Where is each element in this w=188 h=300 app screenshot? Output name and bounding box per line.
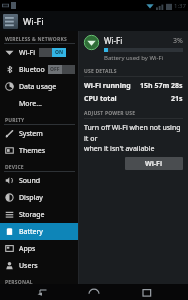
- staticText: Bluetooth: [19, 65, 45, 75]
- button[interactable]: System: [0, 125, 78, 142]
- button[interactable]: Display: [0, 189, 78, 206]
- staticText: Wi-Fi running: [84, 81, 140, 91]
- staticText: Battery: [19, 227, 43, 237]
- staticText: Wi-Fi: [23, 15, 44, 27]
- staticText: Data usage: [19, 82, 57, 92]
- staticText: System: [19, 129, 43, 139]
- staticText: Sound: [19, 176, 41, 186]
- staticText: Apps: [19, 244, 36, 254]
- button[interactable]: More...: [0, 95, 78, 112]
- staticText: CPU total: [84, 94, 171, 104]
- staticText: 15h 57m 28s: [140, 81, 183, 91]
- button[interactable]: Battery: [0, 223, 78, 240]
- staticText: ADJUST POWER USE: [84, 110, 136, 117]
- button[interactable]: Data usage: [0, 78, 78, 95]
- button[interactable]: Storage: [0, 206, 78, 223]
- staticText: 1:37: [174, 2, 186, 10]
- staticText: Wi-Fi: [104, 35, 173, 46]
- staticText: Themes: [19, 146, 46, 156]
- staticText: Users: [19, 261, 38, 271]
- staticText: WIRELESS & NETWORKS: [5, 36, 67, 43]
- staticText: Storage: [19, 210, 45, 220]
- staticText: OFF: [50, 66, 60, 73]
- staticText: 21s: [171, 94, 183, 104]
- button[interactable]: Apps: [0, 240, 78, 257]
- staticText: Wi-Fi: [19, 48, 36, 58]
- button[interactable]: OFF: [48, 65, 75, 74]
- staticText: ON: [55, 49, 64, 56]
- staticText: Wi-Fi: [145, 159, 163, 169]
- button[interactable]: Themes: [0, 142, 78, 159]
- staticText: DEVICE: [5, 164, 24, 171]
- button[interactable]: Recent apps: [136, 284, 158, 300]
- staticText: Turn off Wi-Fi when not using it or when…: [84, 123, 183, 153]
- staticText: Battery used by Wi-Fi: [104, 54, 164, 62]
- button[interactable]: Wi-Fi: [0, 44, 78, 61]
- button[interactable]: Location access: [0, 287, 78, 295]
- button[interactable]: Users: [0, 257, 78, 274]
- staticText: PERSONAL: [5, 279, 33, 286]
- staticText: Location access: [19, 287, 71, 295]
- staticText: 3%: [173, 36, 183, 46]
- button[interactable]: Wi-Fi: [125, 157, 183, 170]
- button[interactable]: Wi-Fi: [0, 11, 188, 31]
- staticText: USE DETAILS: [84, 68, 117, 75]
- button[interactable]: Back: [31, 284, 53, 300]
- staticText: Display: [19, 193, 43, 203]
- button[interactable]: ON: [39, 48, 66, 57]
- staticText: PURITY: [5, 117, 25, 124]
- button[interactable]: Home: [83, 284, 105, 300]
- button[interactable]: Bluetooth: [0, 61, 78, 78]
- button[interactable]: Sound: [0, 172, 78, 189]
- staticText: More...: [19, 99, 42, 109]
